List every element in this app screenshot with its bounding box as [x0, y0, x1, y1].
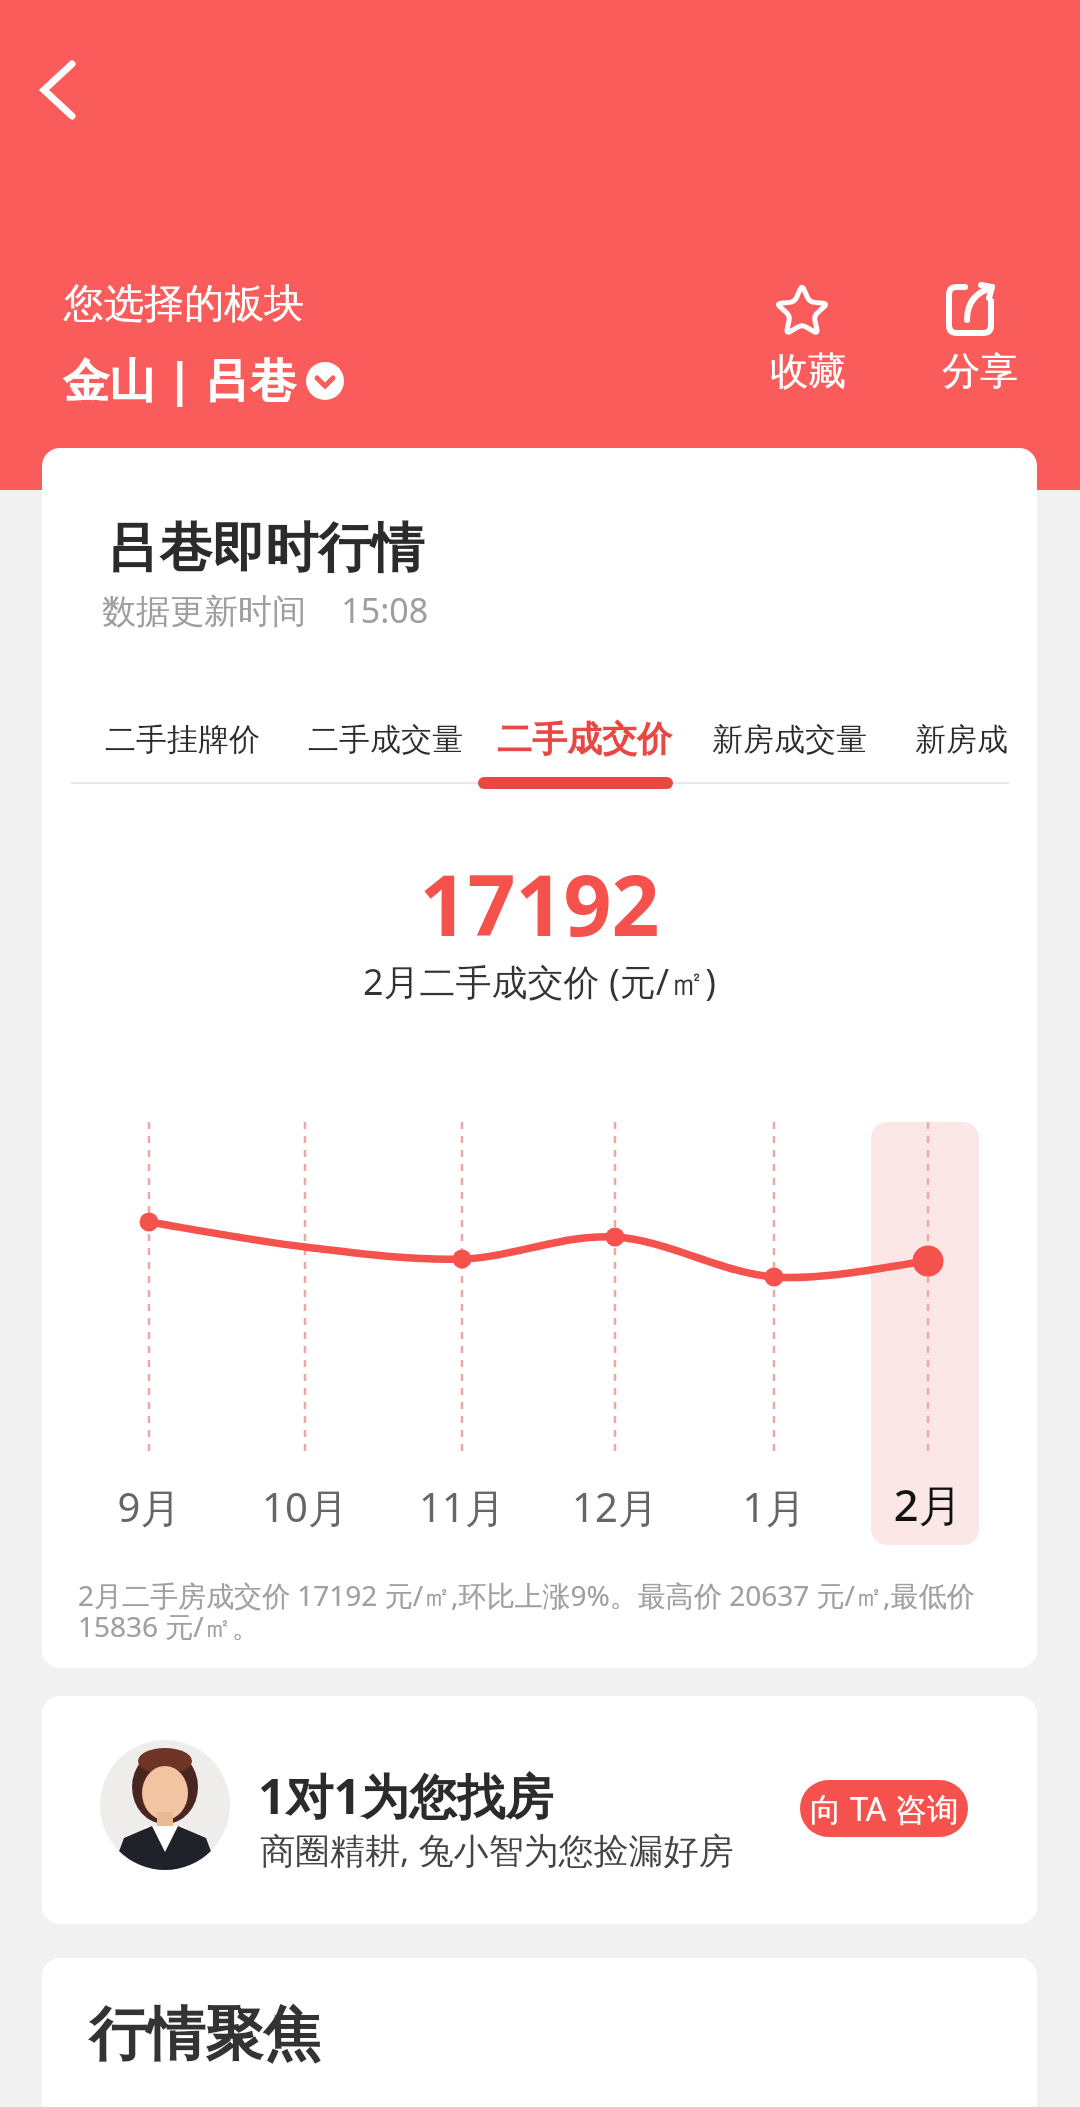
- button[interactable]: 二手成交价: [497, 717, 672, 761]
- button[interactable]: 新房成交量: [712, 720, 867, 759]
- button[interactable]: 收藏: [760, 275, 856, 395]
- button[interactable]: 新房成交价: [915, 720, 1009, 762]
- staticText: 17192: [42, 846, 1037, 960]
- staticText: 11月: [402, 1479, 522, 1534]
- staticText: 1月: [714, 1479, 834, 1534]
- staticText: 您选择的板块: [64, 278, 304, 328]
- staticText: 向 TA 咨询: [810, 1787, 959, 1831]
- staticText: 数据更新时间 15:08: [102, 587, 429, 633]
- button[interactable]: 分享: [932, 275, 1028, 395]
- staticText: 二手挂牌价: [105, 720, 260, 759]
- staticText: 分享: [932, 347, 1028, 395]
- staticText: 新房成交价: [915, 720, 1009, 759]
- button[interactable]: 向 TA 咨询: [800, 1780, 968, 1837]
- button[interactable]: 金山 | 吕巷: [63, 348, 297, 411]
- staticText: 二手成交价: [497, 717, 672, 761]
- staticText: 2月: [868, 1474, 988, 1534]
- staticText: 10月: [245, 1479, 365, 1534]
- button[interactable]: [306, 362, 344, 400]
- staticText: 2月二手成交价 (元/㎡): [42, 957, 1037, 1006]
- button[interactable]: 二手挂牌价: [105, 720, 260, 759]
- staticText: 商圈精耕, 兔小智为您捡漏好房: [260, 1826, 734, 1874]
- staticText: 1对1为您找房: [258, 1763, 553, 1829]
- button[interactable]: 二手成交量: [308, 720, 463, 759]
- staticText: 15836 元/㎡。: [78, 1607, 260, 1645]
- staticText: 二手成交量: [308, 720, 463, 759]
- button[interactable]: [30, 52, 90, 128]
- staticText: 行情聚焦: [89, 1998, 321, 2071]
- staticText: 新房成交量: [712, 720, 867, 759]
- staticText: 2月二手房成交价 17192 元/㎡,环比上涨9%。最高价 20637 元/㎡,…: [78, 1576, 975, 1614]
- staticText: 收藏: [760, 347, 856, 395]
- staticText: 9月: [89, 1479, 209, 1534]
- staticText: 吕巷即时行情: [106, 515, 424, 582]
- staticText: 金山 | 吕巷: [63, 348, 297, 411]
- staticText: 12月: [555, 1479, 675, 1534]
